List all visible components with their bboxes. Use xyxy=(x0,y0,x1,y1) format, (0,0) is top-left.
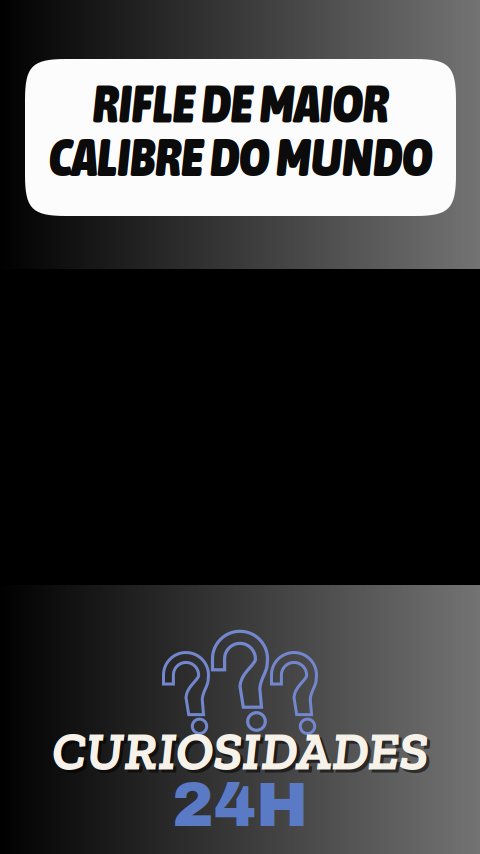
staticText: 24H xyxy=(172,771,308,839)
button[interactable]: RIFLE DE MAIOR xyxy=(25,59,456,216)
staticText: CURIOSIDADES xyxy=(52,718,428,784)
staticText: CALIBRE DO MUNDO xyxy=(49,127,432,187)
staticText: CURIOSIDADES xyxy=(55,721,431,787)
staticText: RIFLE DE MAIOR xyxy=(92,74,388,133)
